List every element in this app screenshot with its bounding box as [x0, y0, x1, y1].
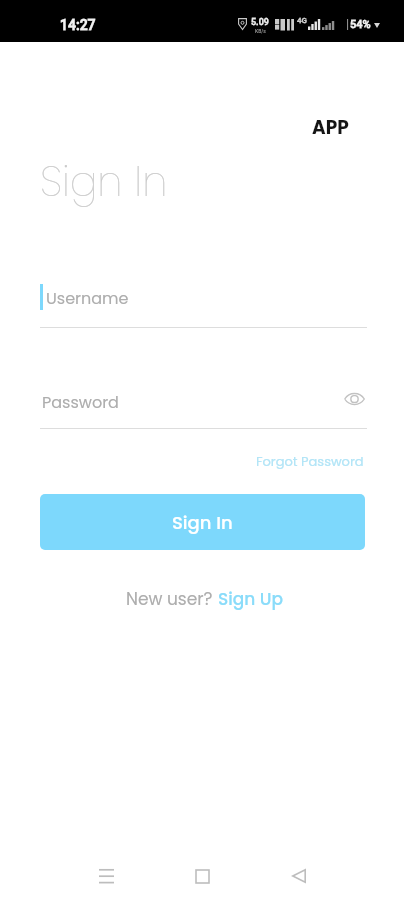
button[interactable]: Sign Up [218, 587, 283, 611]
button[interactable]: Username [40, 282, 367, 328]
button[interactable]: Password [40, 386, 367, 429]
button[interactable]: Show password [340, 385, 368, 413]
button[interactable]: Recent apps [82, 852, 130, 900]
button[interactable]: Home [178, 852, 226, 900]
staticText: Username [46, 287, 129, 309]
button[interactable]: Sign In [40, 494, 365, 550]
staticText: Sign Up [218, 587, 283, 611]
staticText: 4G [297, 16, 307, 25]
staticText: Forgot Password [256, 452, 364, 470]
staticText: APP [312, 115, 349, 141]
staticText: 5.09 [251, 17, 269, 28]
staticText: New user? [126, 587, 218, 611]
staticText: KB/s [255, 28, 266, 34]
button[interactable]: Forgot Password [248, 444, 372, 478]
button[interactable]: Back [275, 852, 323, 900]
staticText: Password [42, 391, 119, 413]
staticText: Sign In [172, 510, 233, 535]
staticText: 54% [350, 18, 371, 31]
button[interactable]: APP [304, 107, 357, 149]
staticText: Sign In [40, 153, 168, 210]
staticText: 14:27 [60, 17, 96, 33]
